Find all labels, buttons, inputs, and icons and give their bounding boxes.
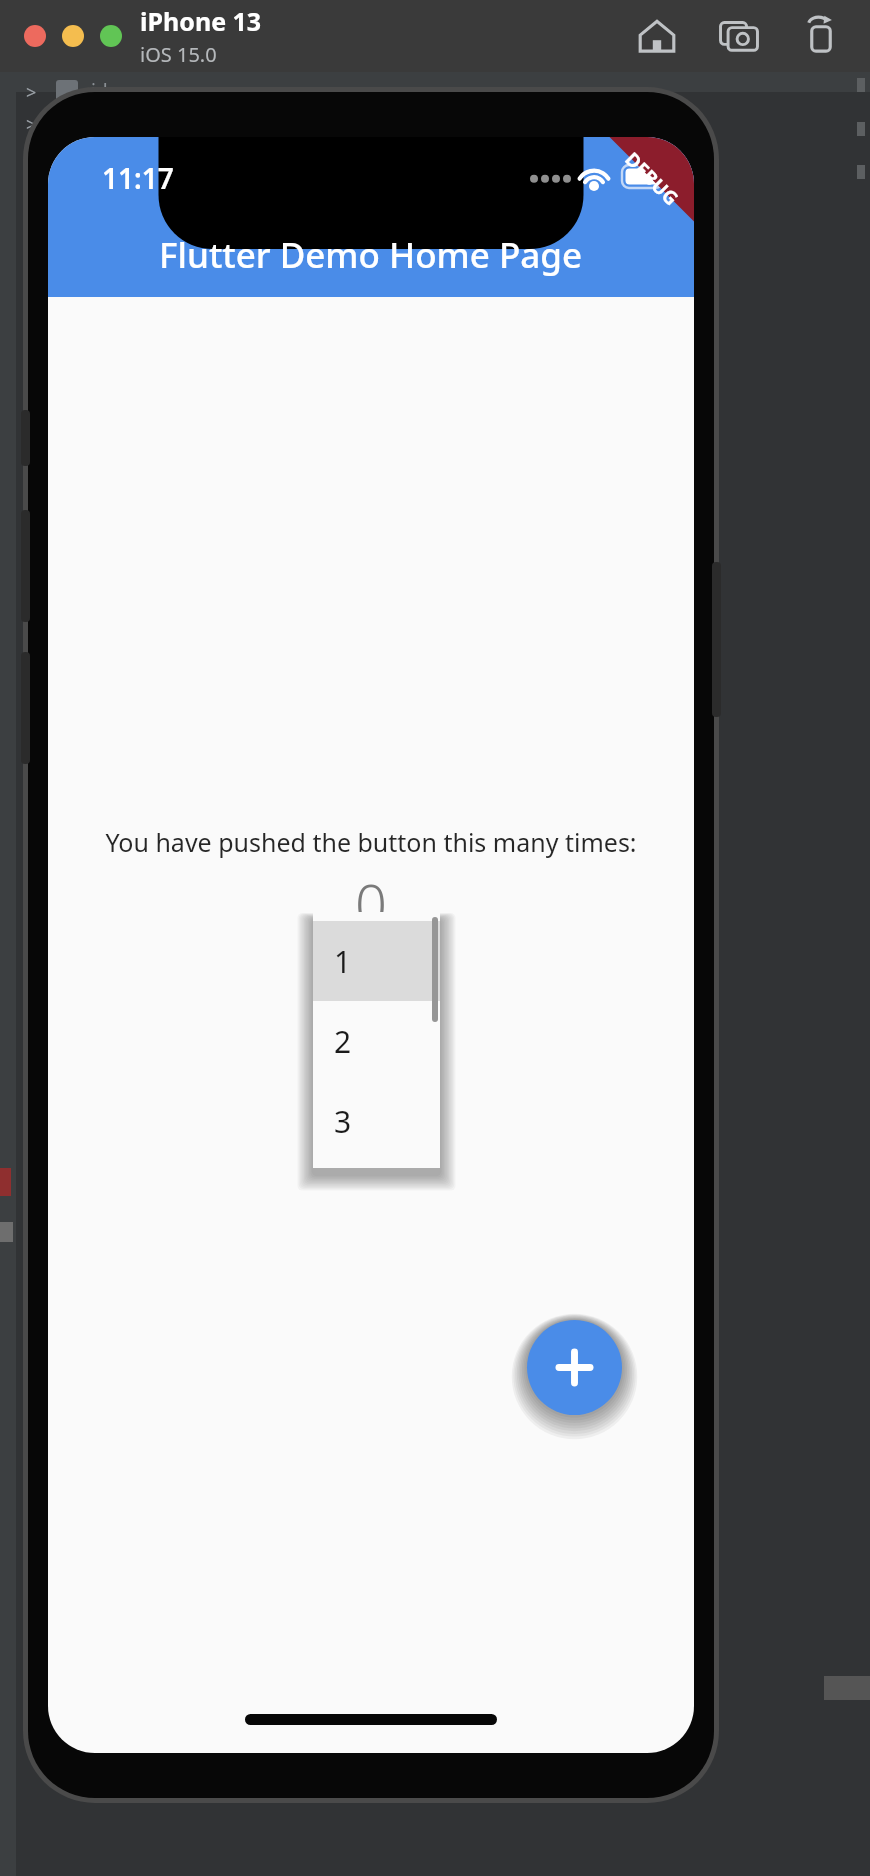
staticText: You have pushed the button this many tim… bbox=[105, 825, 637, 859]
staticText: 11:17 bbox=[102, 159, 174, 197]
staticText: 3 bbox=[334, 1101, 352, 1142]
staticText: Flutter Demo Home Page bbox=[159, 231, 583, 279]
button[interactable] bbox=[100, 25, 122, 47]
staticText: iOS 15.0 bbox=[140, 41, 217, 68]
button[interactable]: 1 bbox=[313, 921, 440, 1001]
button[interactable]: Screenshot bbox=[718, 15, 760, 57]
button[interactable] bbox=[24, 25, 46, 47]
staticText: 2 bbox=[334, 1021, 352, 1062]
staticText: iPhone 13 bbox=[140, 4, 262, 38]
button[interactable]: Increment bbox=[527, 1320, 622, 1415]
button[interactable]: 3 bbox=[313, 1081, 440, 1161]
button[interactable] bbox=[62, 25, 84, 47]
staticText: 0 bbox=[355, 865, 387, 941]
button[interactable]: Rotate bbox=[800, 15, 842, 57]
button[interactable]: 2 bbox=[313, 1001, 440, 1081]
button[interactable]: Home bbox=[636, 15, 678, 57]
staticText: 1 bbox=[334, 941, 352, 982]
staticText: DEBUG bbox=[619, 146, 685, 212]
staticText: > bbox=[26, 112, 37, 137]
staticText: > bbox=[26, 80, 37, 105]
staticText: .idea bbox=[86, 78, 130, 104]
